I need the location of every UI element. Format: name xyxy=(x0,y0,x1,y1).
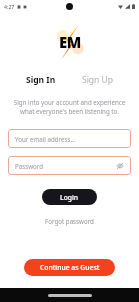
button[interactable]: Your email address... xyxy=(8,129,131,148)
button[interactable]: Continue as Guest xyxy=(24,259,115,276)
staticText: Password xyxy=(15,162,43,170)
staticText: Forgot password xyxy=(45,217,94,225)
button[interactable]: Password xyxy=(8,156,131,175)
button[interactable]: Forgot password xyxy=(37,214,102,228)
button[interactable]: Login xyxy=(42,189,97,205)
staticText: Sign into your account and experience wh… xyxy=(12,98,127,116)
staticText: 4:27 xyxy=(4,3,15,10)
button[interactable]: Show password xyxy=(115,161,124,170)
staticText: Sign Up xyxy=(82,74,113,86)
staticText: Login xyxy=(60,193,79,202)
button[interactable]: Sign Up xyxy=(76,71,119,89)
staticText: Your email address... xyxy=(15,135,76,143)
staticText: EM xyxy=(59,32,81,52)
staticText: Sign In xyxy=(26,74,56,86)
staticText: Continue as Guest xyxy=(40,263,100,272)
button[interactable]: Sign In xyxy=(20,71,62,89)
